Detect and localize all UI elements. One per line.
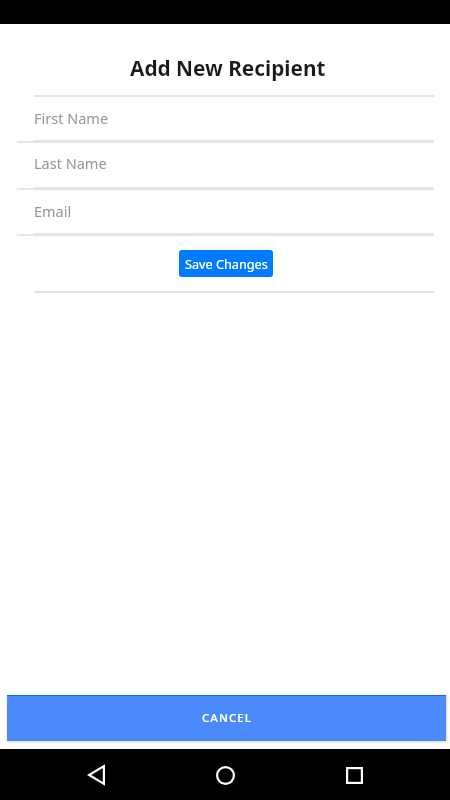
staticText: Last Name [34,153,107,173]
button[interactable] [0,143,450,186]
button[interactable]: Back [72,751,120,799]
staticText: CANCEL [202,710,252,726]
button[interactable]: Home [201,751,249,799]
button[interactable] [0,190,450,233]
staticText: Email [34,201,72,221]
staticText: Add New Recipient [130,54,326,82]
staticText: Save Changes [185,255,268,272]
button[interactable] [0,97,450,140]
staticText: First Name [34,108,109,128]
button[interactable]: CANCEL [7,695,446,741]
button[interactable]: Save Changes [179,250,273,277]
button[interactable]: Recent apps [330,751,378,799]
